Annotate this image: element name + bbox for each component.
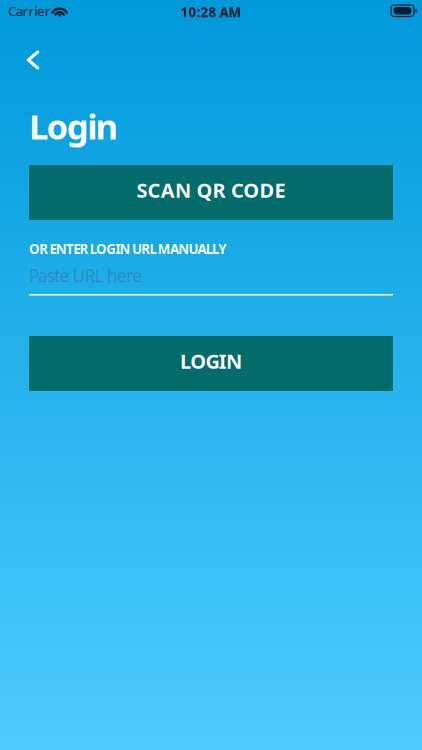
staticText: Login (29, 103, 119, 149)
button[interactable]: SCAN QR CODE (29, 165, 393, 220)
staticText: Carrier (8, 2, 51, 20)
staticText: LOGIN (180, 348, 242, 374)
staticText: 10:28 AM (180, 3, 241, 21)
staticText: OR ENTER LOGIN URL MANUALLY (29, 240, 226, 258)
staticText: SCAN QR CODE (136, 177, 286, 203)
button[interactable]: Back (11, 40, 55, 80)
staticText: Paste URL here (29, 264, 142, 287)
button[interactable]: LOGIN (29, 336, 393, 391)
button[interactable]: Paste URL here (29, 264, 393, 298)
